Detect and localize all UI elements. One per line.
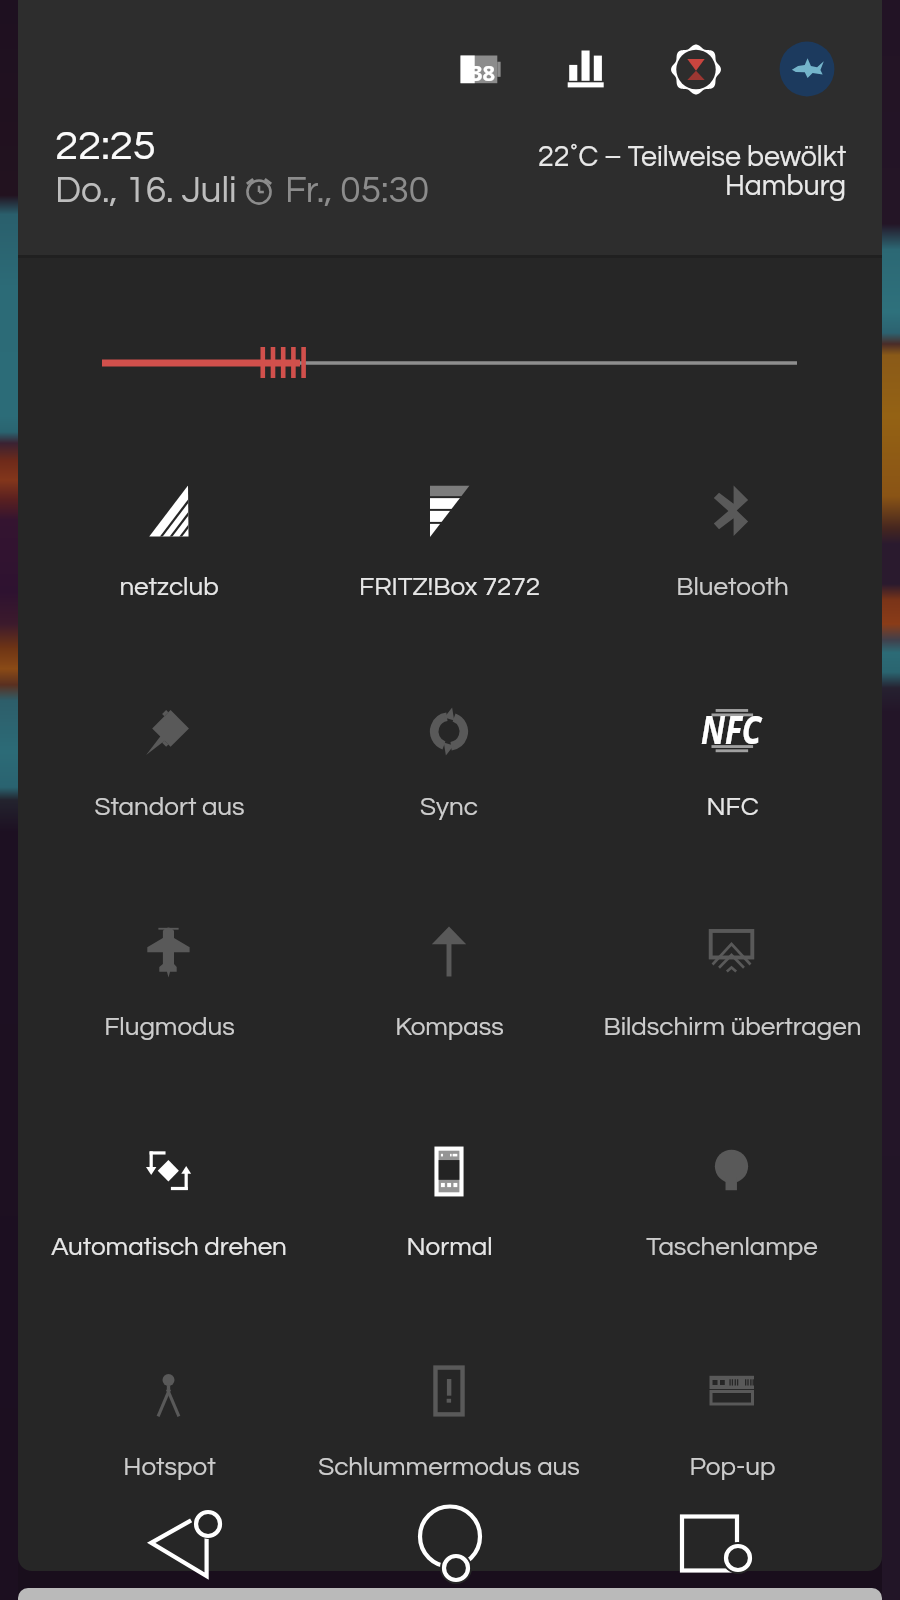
button[interactable]: Bluetooth bbox=[600, 401, 900, 621]
button[interactable]: Home bbox=[300, 1471, 600, 1571]
button[interactable]: netzclub bbox=[0, 401, 300, 621]
staticText: Sync bbox=[420, 794, 478, 821]
button[interactable]: Sync bbox=[300, 621, 600, 841]
staticText: 22:25 bbox=[55, 125, 156, 168]
staticText: Pop-up bbox=[689, 1454, 776, 1481]
staticText: Do., 16. Juli bbox=[55, 172, 237, 210]
button[interactable]: Kompass bbox=[300, 841, 600, 1061]
button[interactable]: Standort aus bbox=[0, 621, 300, 841]
staticText: Normal bbox=[406, 1234, 493, 1261]
button[interactable]: Automatisch drehen bbox=[0, 1061, 300, 1281]
staticText: NFC bbox=[701, 702, 762, 755]
staticText: FRITZ!Box 7272 bbox=[359, 574, 540, 601]
staticText: Hotspot bbox=[123, 1454, 216, 1481]
staticText: Flugmodus bbox=[104, 1014, 235, 1041]
button[interactable]: NFC bbox=[600, 621, 900, 841]
staticText: Bildschirm übertragen bbox=[603, 1014, 862, 1041]
button[interactable]: Recent apps bbox=[600, 1471, 900, 1571]
button[interactable]: Back bbox=[0, 1471, 300, 1571]
staticText: netzclub bbox=[119, 574, 219, 601]
staticText: Schlummermodus aus bbox=[318, 1454, 580, 1481]
button[interactable]: FRITZ!Box 7272 bbox=[300, 401, 600, 621]
button[interactable]: Normal bbox=[300, 1061, 600, 1281]
staticText: 38 bbox=[470, 57, 496, 87]
staticText: NFC bbox=[706, 794, 759, 821]
button[interactable]: Bildschirm übertragen bbox=[600, 841, 900, 1061]
staticText: 22˚C – Teilweise bewölkt bbox=[538, 143, 847, 172]
staticText: Fr., 05:30 bbox=[285, 172, 430, 210]
button[interactable]: Flugmodus bbox=[0, 841, 300, 1061]
staticText: Taschenlampe bbox=[646, 1234, 818, 1261]
staticText: Standort aus bbox=[94, 794, 245, 821]
staticText: Hamburg bbox=[725, 172, 847, 201]
staticText: Bluetooth bbox=[676, 574, 789, 601]
staticText: Automatisch drehen bbox=[51, 1234, 287, 1261]
button[interactable]: Pop-up bbox=[600, 1281, 900, 1501]
button[interactable]: Brightness bbox=[84, 340, 824, 386]
button[interactable]: Schlummermodus aus bbox=[300, 1281, 600, 1501]
button[interactable]: Taschenlampe bbox=[600, 1061, 900, 1281]
staticText: Kompass bbox=[395, 1014, 504, 1041]
button[interactable]: Hotspot bbox=[0, 1281, 300, 1501]
